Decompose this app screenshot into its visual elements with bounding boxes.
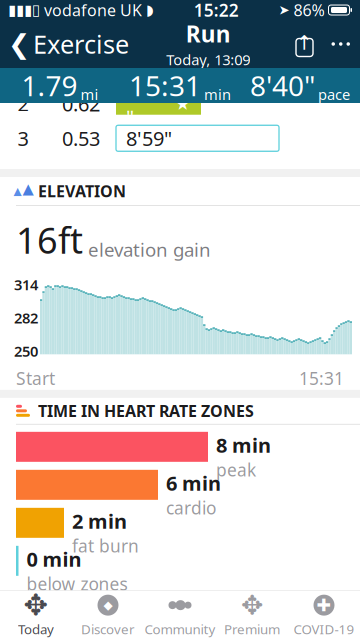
staticText: ➤: [278, 2, 289, 17]
staticText: 15:22: [194, 0, 239, 21]
staticText: Start: [16, 367, 55, 390]
staticText: ◗: [146, 2, 154, 18]
button[interactable]: ✥: [0, 591, 72, 640]
staticText: 3: [17, 125, 28, 152]
staticText: 0.62: [62, 90, 100, 117]
staticText: 314: [14, 275, 38, 294]
staticText: Exercise: [33, 27, 129, 61]
staticText: 0.53: [62, 125, 100, 152]
staticText: ✥: [241, 590, 263, 620]
staticText: fat burn: [72, 534, 139, 557]
button[interactable]: Community: [144, 591, 216, 640]
staticText: 8'23": [126, 77, 164, 130]
staticText: Run: [186, 19, 231, 49]
button[interactable]: ❮: [0, 21, 129, 67]
staticText: ELEVATION: [38, 180, 126, 202]
staticText: TIME IN HEART RATE ZONES: [38, 400, 254, 421]
staticText: vodafone UK: [44, 0, 142, 21]
staticText: 86%: [293, 0, 324, 21]
staticText: 1.79: [21, 67, 77, 104]
staticText: 15:31: [129, 67, 201, 104]
staticText: Community: [144, 620, 215, 638]
staticText: 2 min: [72, 508, 127, 534]
staticText: 282: [14, 308, 38, 328]
staticText: 2: [17, 90, 28, 117]
staticText: cardio: [166, 496, 216, 519]
staticText: 0 min: [26, 546, 81, 572]
button[interactable]: ✚: [288, 591, 360, 640]
staticText: ▲: [13, 185, 21, 197]
staticText: Today: [18, 620, 54, 638]
staticText: mi: [80, 85, 98, 104]
staticText: ▮▮▮▯: [8, 2, 40, 18]
staticText: ◆: [103, 598, 112, 612]
staticText: ✚: [316, 595, 331, 615]
staticText: ★: [175, 94, 191, 114]
staticText: 16ft: [16, 216, 83, 264]
button[interactable]: More options: [321, 32, 360, 56]
staticText: ✥: [23, 588, 48, 622]
button[interactable]: ◆: [72, 591, 144, 640]
staticText: below zones: [26, 572, 127, 595]
staticText: 8'59": [126, 125, 172, 152]
staticText: min: [204, 85, 231, 104]
staticText: Discover: [81, 620, 135, 638]
staticText: ▲: [22, 180, 33, 197]
staticText: peak: [216, 458, 256, 481]
staticText: 8'40": [250, 67, 315, 104]
staticText: ❮: [8, 29, 30, 59]
staticText: ↑: [296, 31, 313, 54]
staticText: 15:31: [299, 367, 344, 390]
staticText: Today, 13:09: [166, 50, 250, 69]
button[interactable]: Share: [287, 25, 321, 63]
staticText: COVID-19: [293, 620, 354, 638]
staticText: 6 min: [166, 470, 221, 496]
staticText: elevation gain: [88, 237, 211, 262]
staticText: 250: [14, 341, 38, 361]
staticText: pace: [318, 85, 350, 104]
staticText: 8 min: [216, 432, 271, 458]
staticText: Premium: [224, 620, 280, 638]
button[interactable]: ✥: [216, 591, 288, 640]
